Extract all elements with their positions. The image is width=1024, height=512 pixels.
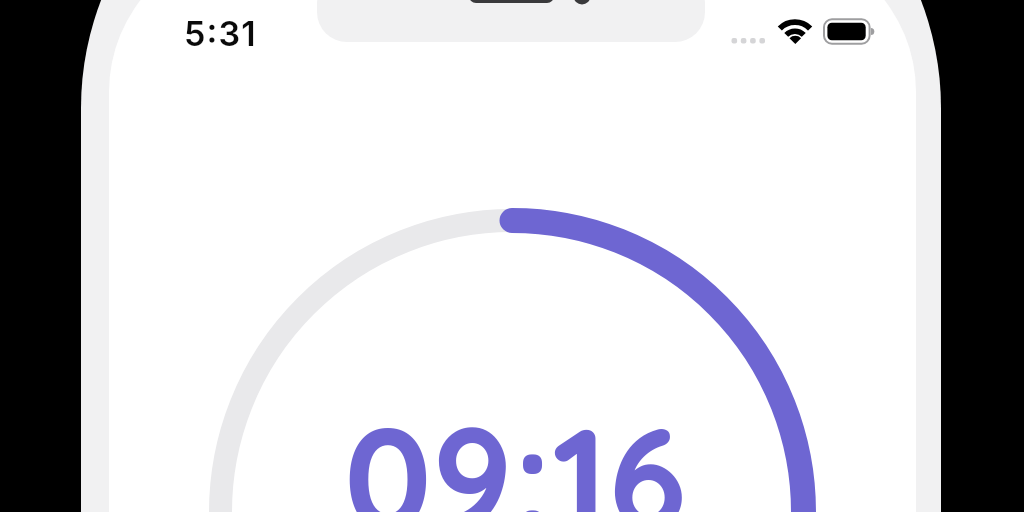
staticText: 09:16	[344, 387, 687, 512]
staticText: 5:31	[184, 13, 257, 54]
